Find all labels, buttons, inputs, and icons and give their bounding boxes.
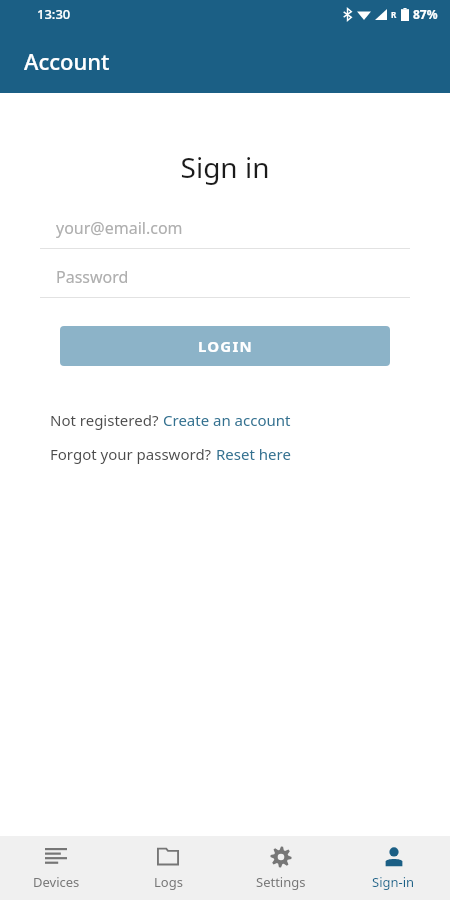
staticText: Devices (33, 873, 80, 891)
button[interactable]: Password (40, 257, 410, 297)
staticText: Account (24, 46, 110, 76)
staticText: Settings (256, 873, 306, 891)
staticText: Reset here (216, 444, 291, 464)
button[interactable]: Settings (224, 836, 337, 900)
staticText: R (391, 9, 397, 20)
staticText: Forgot your password? (50, 444, 216, 464)
staticText: your@email.com (56, 217, 183, 239)
staticText: 87% (413, 6, 438, 22)
staticText: Not registered? (50, 410, 163, 430)
staticText: Password (56, 266, 129, 288)
staticText: Logs (154, 873, 183, 891)
staticText: LOGIN (198, 336, 253, 356)
button[interactable]: Sign-in (337, 836, 450, 900)
button[interactable]: Devices (0, 836, 112, 900)
button[interactable]: Forgot your password? (50, 444, 291, 464)
button[interactable]: Logs (112, 836, 224, 900)
staticText: 13:30 (37, 5, 71, 23)
button[interactable]: your@email.com (40, 208, 410, 248)
staticText: Create an account (163, 410, 291, 430)
staticText: Sign-in (372, 873, 415, 891)
button[interactable]: LOGIN (60, 326, 390, 366)
button[interactable]: Not registered? (50, 410, 291, 430)
staticText: Sign in (0, 148, 450, 186)
